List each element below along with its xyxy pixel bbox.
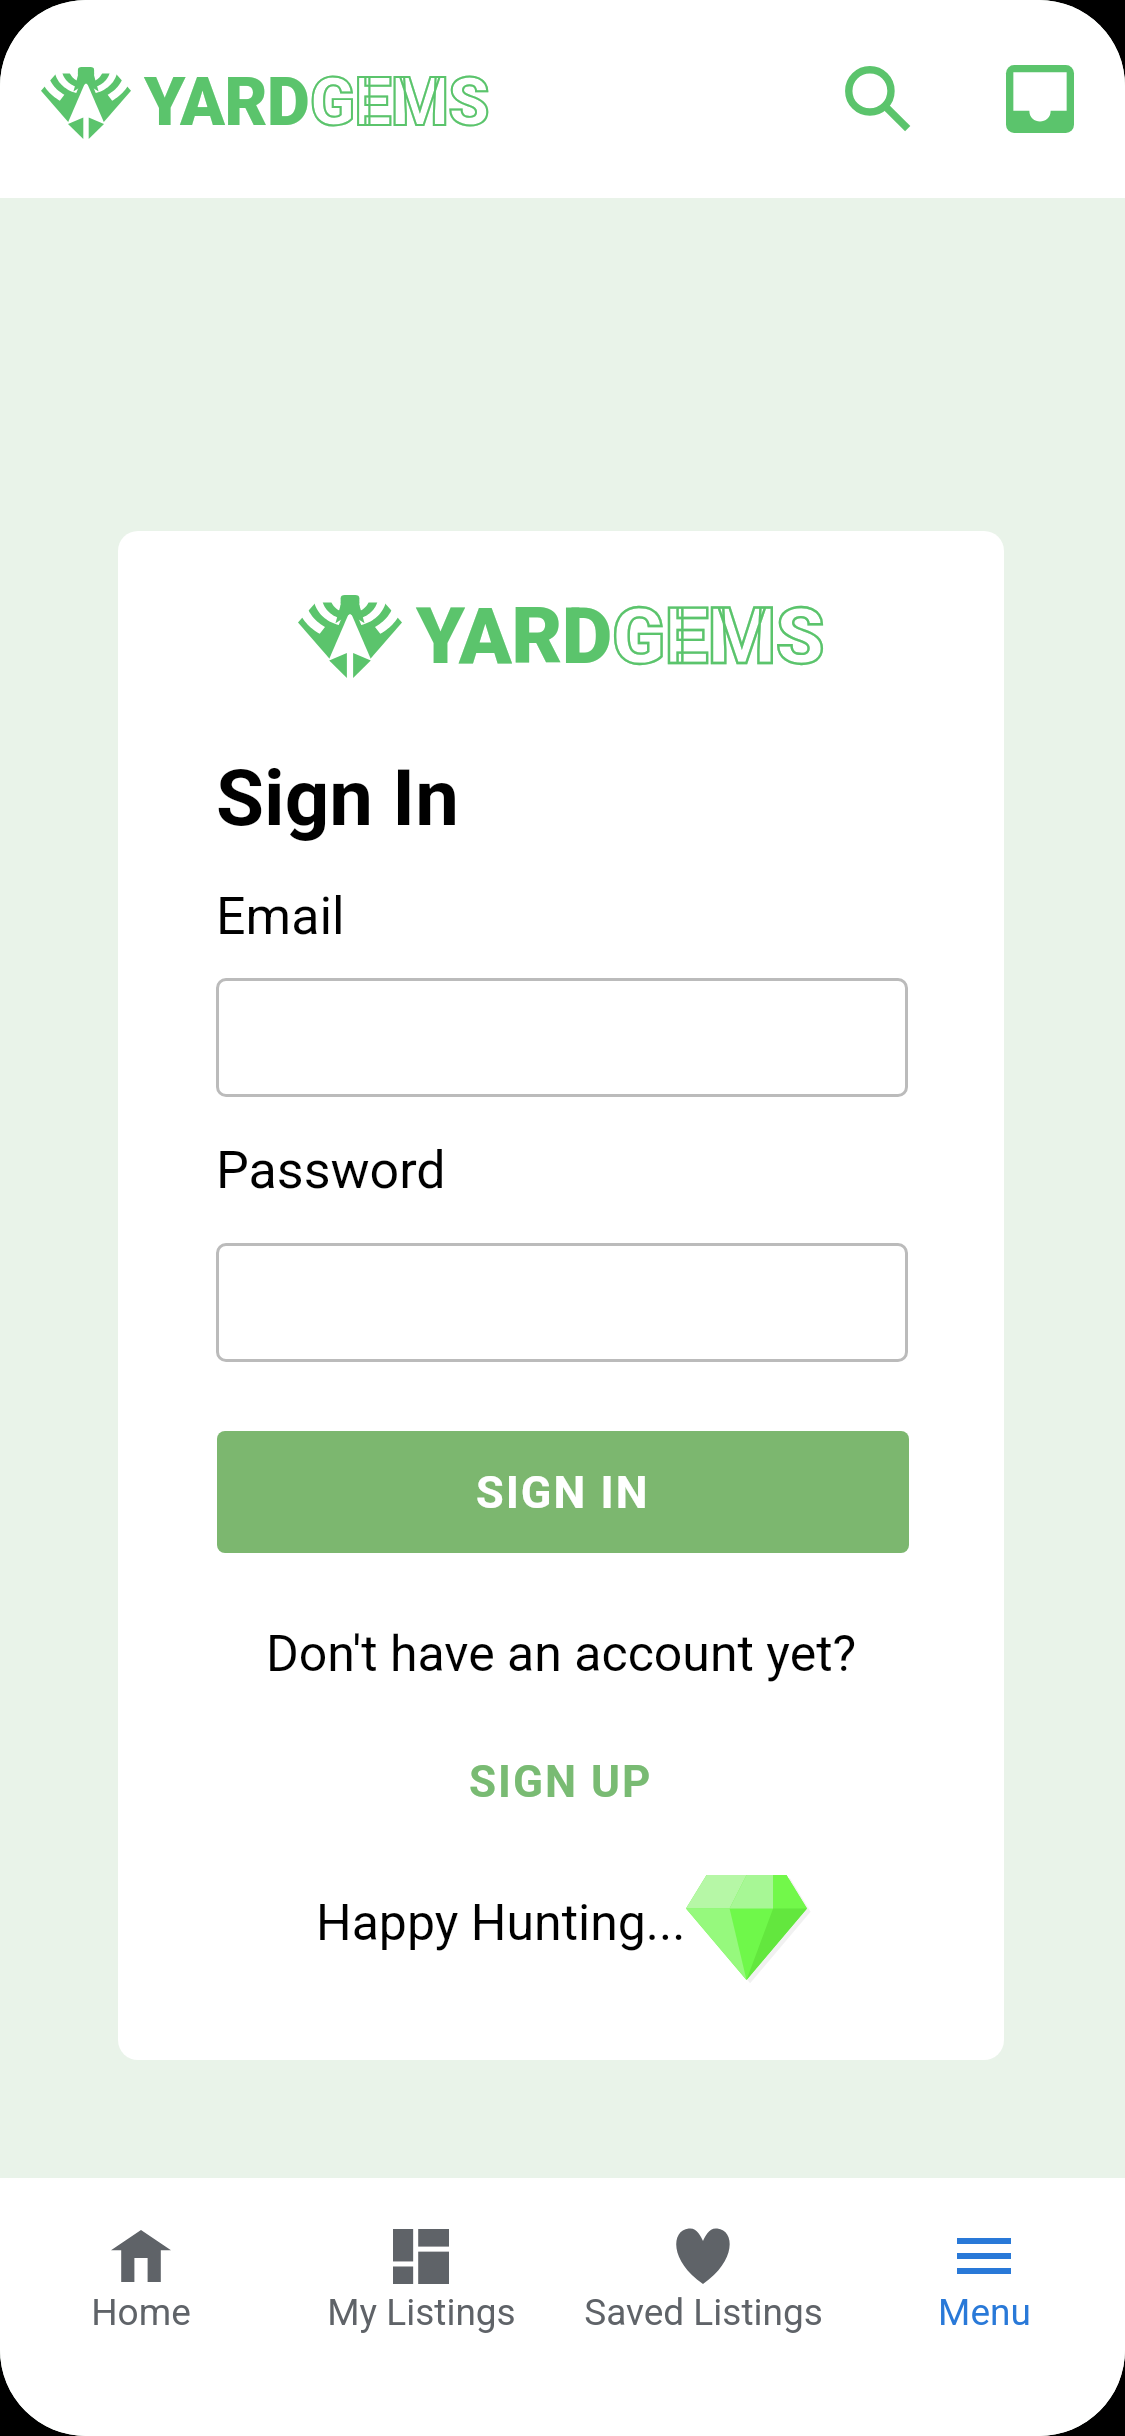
staticText: Menu bbox=[938, 2291, 1031, 2334]
staticText: Home bbox=[91, 2291, 191, 2334]
button[interactable]: Menu bbox=[844, 2226, 1124, 2334]
button[interactable]: Saved Listings bbox=[563, 2226, 843, 2334]
button[interactable]: SIGN UP bbox=[445, 1746, 677, 1818]
staticText: My Listings bbox=[327, 2291, 516, 2334]
staticText: GEMS bbox=[612, 591, 825, 682]
staticText: SIGN IN bbox=[476, 1466, 650, 1519]
staticText: YARD bbox=[416, 591, 612, 682]
staticText: Happy Hunting... bbox=[316, 1894, 686, 1953]
button[interactable]: SIGN IN bbox=[217, 1431, 909, 1553]
button[interactable] bbox=[216, 978, 908, 1097]
button[interactable]: Home bbox=[1, 2226, 281, 2334]
staticText: Sign In bbox=[216, 753, 459, 844]
staticText: SIGN UP bbox=[469, 1756, 653, 1808]
staticText: Don't have an account yet? bbox=[266, 1625, 857, 1684]
button[interactable] bbox=[216, 1243, 908, 1362]
button[interactable]: My Listings bbox=[281, 2226, 561, 2334]
button[interactable]: Search bbox=[813, 34, 943, 164]
staticText: Saved Listings bbox=[584, 2291, 823, 2334]
staticText: YARD bbox=[144, 64, 310, 141]
staticText: GEMS bbox=[310, 64, 490, 141]
staticText: Email bbox=[216, 886, 345, 947]
button[interactable]: Inbox bbox=[975, 34, 1105, 164]
staticText: Password bbox=[216, 1140, 446, 1201]
